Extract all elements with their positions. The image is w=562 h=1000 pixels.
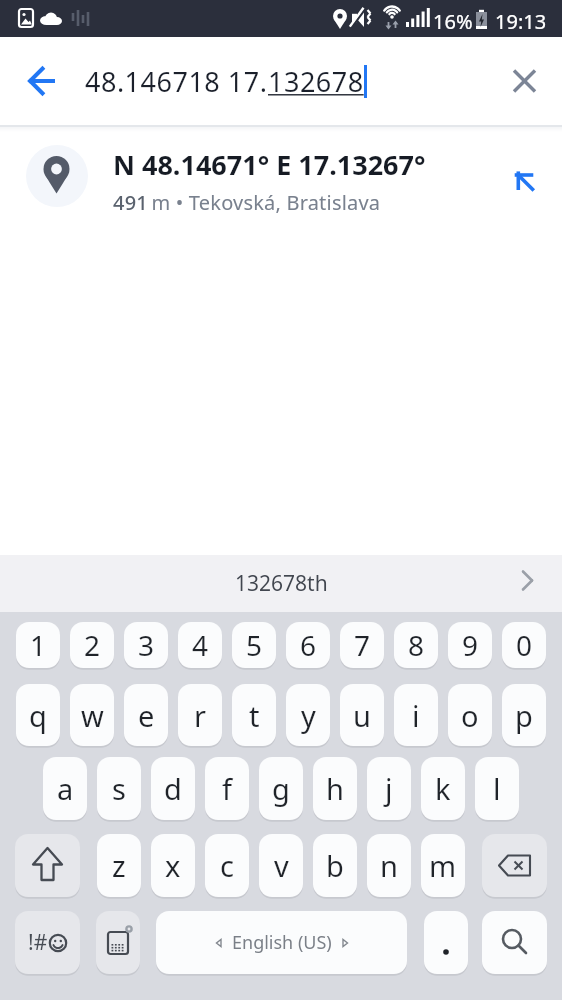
staticText: d bbox=[164, 769, 182, 808]
staticText: 2 bbox=[84, 626, 101, 664]
staticText: 19:13 bbox=[495, 8, 547, 35]
button[interactable]: d bbox=[151, 757, 195, 820]
staticText: s bbox=[112, 769, 126, 808]
button[interactable]: w bbox=[70, 684, 114, 746]
staticText: e bbox=[138, 696, 155, 735]
button[interactable]: z bbox=[97, 834, 141, 897]
button[interactable] bbox=[482, 911, 547, 974]
staticText: r bbox=[194, 696, 206, 735]
staticText: 6 bbox=[300, 626, 317, 664]
staticText: f bbox=[222, 769, 232, 808]
staticText: l bbox=[493, 769, 501, 808]
button[interactable]: l bbox=[475, 757, 519, 820]
button[interactable]: 4 bbox=[178, 622, 222, 668]
button[interactable]: s bbox=[97, 757, 141, 820]
button[interactable]: 6 bbox=[286, 622, 330, 668]
button[interactable]: 9 bbox=[448, 622, 492, 668]
staticText: p bbox=[515, 696, 533, 735]
staticText: n bbox=[380, 846, 398, 885]
button[interactable]: y bbox=[286, 684, 330, 746]
staticText: 0 bbox=[516, 626, 533, 664]
staticText: t bbox=[249, 696, 260, 735]
button[interactable]: u bbox=[340, 684, 384, 746]
staticText: N 48.14671° E 17.13267° bbox=[113, 146, 426, 183]
staticText: q bbox=[29, 696, 47, 735]
button[interactable]: N 48.14671° E 17.13267° bbox=[0, 132, 562, 232]
button[interactable]: p bbox=[502, 684, 546, 746]
staticText: 3 bbox=[138, 626, 155, 664]
staticText: 132678 bbox=[268, 63, 364, 100]
button[interactable]: o bbox=[448, 684, 492, 746]
button[interactable] bbox=[504, 61, 544, 101]
staticText: 48.146718 17. bbox=[85, 63, 268, 100]
staticText: v bbox=[274, 846, 289, 885]
staticText: j bbox=[385, 769, 393, 808]
button[interactable]: k bbox=[421, 757, 465, 820]
staticText: 491 m • Tekovská, Bratislava bbox=[113, 189, 381, 216]
button[interactable]: m bbox=[421, 834, 465, 897]
staticText: k bbox=[435, 769, 451, 808]
staticText: 132678th bbox=[235, 569, 328, 598]
staticText: u bbox=[353, 696, 371, 735]
button[interactable]: q bbox=[16, 684, 60, 746]
button[interactable]: a bbox=[43, 757, 87, 820]
button[interactable]: c bbox=[205, 834, 249, 897]
staticText: i bbox=[412, 696, 420, 735]
button[interactable]: !# bbox=[15, 911, 80, 974]
button[interactable]: 5 bbox=[232, 622, 276, 668]
staticText: h bbox=[326, 769, 344, 808]
button[interactable]: i bbox=[394, 684, 438, 746]
staticText: 9 bbox=[462, 626, 479, 664]
staticText: c bbox=[220, 846, 234, 885]
staticText: a bbox=[57, 769, 74, 808]
button[interactable]: 8 bbox=[394, 622, 438, 668]
staticText: 5 bbox=[246, 626, 263, 664]
staticText: g bbox=[272, 769, 290, 808]
button[interactable]: 3 bbox=[124, 622, 168, 668]
staticText: w bbox=[81, 696, 104, 735]
button[interactable] bbox=[22, 61, 62, 101]
staticText: b bbox=[326, 846, 344, 885]
button[interactable]: f bbox=[205, 757, 249, 820]
button[interactable] bbox=[424, 911, 468, 974]
staticText: m bbox=[429, 846, 457, 885]
staticText: x bbox=[165, 846, 181, 885]
button[interactable]: h bbox=[313, 757, 357, 820]
staticText: !# bbox=[28, 928, 48, 957]
button[interactable]: 7 bbox=[340, 622, 384, 668]
button[interactable] bbox=[96, 911, 140, 974]
button[interactable]: 1 bbox=[16, 622, 60, 668]
button[interactable]: n bbox=[367, 834, 411, 897]
button[interactable]: r bbox=[178, 684, 222, 746]
staticText: z bbox=[112, 846, 126, 885]
button[interactable]: b bbox=[313, 834, 357, 897]
staticText: 16% bbox=[433, 8, 473, 35]
staticText: 8 bbox=[408, 626, 425, 664]
staticText: 7 bbox=[354, 626, 371, 664]
button[interactable]: g bbox=[259, 757, 303, 820]
staticText: 1 bbox=[30, 626, 47, 664]
button[interactable]: e bbox=[124, 684, 168, 746]
button[interactable]: 2 bbox=[70, 622, 114, 668]
button[interactable]: x bbox=[151, 834, 195, 897]
staticText: y bbox=[301, 696, 316, 735]
button[interactable] bbox=[15, 834, 80, 897]
button[interactable]: 0 bbox=[502, 622, 546, 668]
staticText: o bbox=[461, 696, 479, 735]
staticText: English (US) bbox=[232, 930, 332, 955]
button[interactable]: English (US) bbox=[156, 911, 407, 974]
button[interactable]: v bbox=[259, 834, 303, 897]
button[interactable]: 48.146718 17. bbox=[85, 37, 367, 125]
button[interactable] bbox=[482, 834, 547, 897]
button[interactable]: 132678th bbox=[0, 555, 562, 612]
staticText: 4 bbox=[192, 626, 209, 664]
button[interactable]: j bbox=[367, 757, 411, 820]
button[interactable]: t bbox=[232, 684, 276, 746]
